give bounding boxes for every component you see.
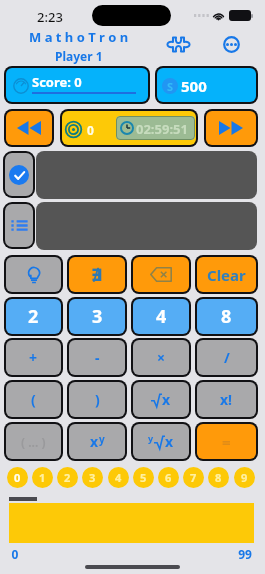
button[interactable]: Fast forward [206, 111, 256, 145]
button[interactable]: - [69, 340, 125, 375]
button[interactable]: 8 [208, 467, 229, 488]
button[interactable]: Nth root [133, 424, 189, 459]
staticText: 99 [236, 546, 254, 562]
button[interactable]: × [133, 340, 189, 375]
staticText: x [162, 390, 171, 409]
staticText: 3 [89, 470, 96, 485]
button[interactable]: 3 [82, 467, 103, 488]
button[interactable]: 1 [32, 467, 53, 488]
staticText: y [99, 432, 105, 446]
button[interactable]: 6 [158, 467, 179, 488]
staticText: ) [95, 390, 100, 409]
button[interactable]: Submit answer [5, 153, 33, 196]
button[interactable]: Power [69, 424, 125, 459]
button[interactable]: Rewind [6, 111, 52, 145]
staticText: 02:59:51 [136, 120, 188, 138]
staticText: - [95, 348, 100, 367]
button[interactable]: Hint [6, 257, 61, 292]
button[interactable]: 7 [183, 467, 204, 488]
staticText: Clear [207, 265, 246, 285]
button[interactable]: 9 [234, 467, 255, 488]
button[interactable]: Extensions [164, 30, 192, 58]
button[interactable]: 3 [69, 299, 125, 334]
staticText: 2:23 [30, 8, 70, 26]
button[interactable]: = [197, 424, 256, 459]
button[interactable]: / [197, 340, 256, 375]
staticText: ( ... ) [21, 434, 46, 450]
staticText: 500 [181, 76, 207, 96]
staticText: × [157, 348, 166, 367]
staticText: 5 [140, 470, 147, 485]
staticText: S [167, 79, 174, 94]
staticText: M a t h o T r o n [29, 28, 129, 46]
staticText: 0 [6, 546, 24, 562]
button[interactable]: 2 [6, 299, 61, 334]
staticText: Player 1 [55, 48, 103, 64]
staticText: 8 [215, 470, 222, 485]
button[interactable]: More options [217, 30, 245, 58]
staticText: = [222, 432, 231, 452]
staticText: 6 [165, 470, 172, 485]
staticText: 3 [92, 304, 103, 329]
button[interactable]: ( ... ) [6, 424, 61, 459]
staticText: Score: 0 [32, 73, 82, 91]
staticText: ∄ [91, 265, 103, 285]
staticText: y [148, 432, 154, 444]
staticText: x [165, 432, 174, 451]
button[interactable]: Clear [197, 257, 256, 292]
button[interactable]: 8 [197, 299, 256, 334]
staticText: x [90, 432, 99, 451]
staticText: 4 [115, 470, 122, 485]
button[interactable]: 4 [108, 467, 129, 488]
button[interactable]: 0 [7, 467, 28, 488]
staticText: 2 [28, 304, 39, 329]
staticText: + [29, 348, 38, 367]
button[interactable]: 4 [133, 299, 189, 334]
button[interactable]: ( [6, 382, 61, 417]
button[interactable]: S [157, 68, 256, 102]
staticText: 0 [14, 470, 21, 485]
button[interactable]: ) [69, 382, 125, 417]
button[interactable]: 5 [133, 467, 154, 488]
button[interactable]: 2 [57, 467, 78, 488]
staticText: 2 [64, 470, 71, 485]
staticText: 1 [39, 470, 46, 485]
staticText: 8 [221, 304, 232, 329]
staticText: x! [220, 390, 233, 409]
staticText: 9 [241, 470, 248, 485]
staticText: 4 [156, 304, 167, 329]
staticText: ( [31, 390, 36, 409]
staticText: 0 [87, 122, 94, 138]
button[interactable]: Square root [133, 382, 189, 417]
button[interactable]: Score: 0 [6, 68, 148, 102]
button[interactable]: History [5, 204, 33, 247]
button[interactable]: ∄ [69, 257, 125, 292]
button[interactable]: x! [197, 382, 256, 417]
staticText: / [224, 348, 230, 367]
button[interactable]: Backspace [133, 257, 189, 292]
staticText: 7 [190, 470, 197, 485]
button[interactable]: 0 [62, 111, 196, 145]
button[interactable]: + [6, 340, 61, 375]
